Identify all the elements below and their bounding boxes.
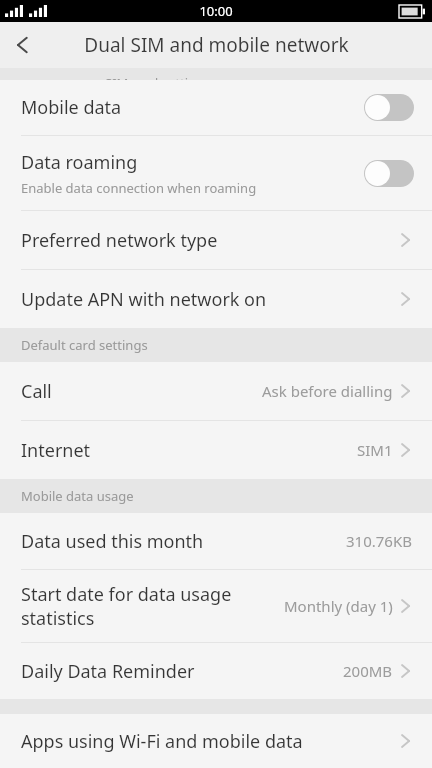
staticText: Monthly (day 1) [284, 596, 393, 616]
staticText: Internet [21, 438, 357, 463]
staticText: Data used this month [21, 529, 346, 554]
staticText: Daily Data Reminder [21, 659, 343, 684]
staticText: Enable data connection when roaming [21, 179, 257, 197]
button[interactable]: Toggle [364, 160, 414, 187]
staticText: 10:00 [199, 2, 233, 20]
staticText: SIM card settings [105, 74, 211, 80]
button[interactable]: Back [0, 22, 46, 68]
button[interactable]: Call [0, 362, 432, 420]
staticText: Mobile data [21, 95, 122, 120]
button[interactable]: Update APN with network on [0, 270, 432, 328]
staticText: SIM1 [357, 440, 393, 460]
staticText: Call [21, 379, 262, 404]
button[interactable]: Toggle [364, 94, 414, 121]
staticText: Update APN with network on [21, 287, 393, 312]
staticText: Preferred network type [21, 228, 393, 253]
button[interactable]: Daily Data Reminder [0, 643, 432, 699]
button[interactable]: Internet [0, 421, 432, 479]
staticText: Dual SIM and mobile network [84, 32, 349, 58]
staticText: Ask before dialling [262, 381, 393, 401]
button[interactable]: Apps using Wi-Fi and mobile data [0, 714, 432, 768]
button[interactable]: Data roaming [0, 136, 432, 210]
staticText: 200MB [343, 661, 393, 681]
button[interactable]: Preferred network type [0, 211, 432, 269]
staticText: Default card settings [21, 336, 148, 354]
staticText: Start date for data usage statistics [21, 582, 284, 630]
staticText: Data roaming [21, 150, 138, 175]
staticText: Mobile data usage [21, 487, 134, 505]
button[interactable]: Mobile data [0, 80, 432, 135]
staticText: Apps using Wi-Fi and mobile data [21, 729, 393, 754]
staticText: 310.76KB [346, 531, 412, 551]
button[interactable]: Start date for data usage statistics [0, 570, 432, 642]
button[interactable]: Data used this month [0, 513, 432, 569]
